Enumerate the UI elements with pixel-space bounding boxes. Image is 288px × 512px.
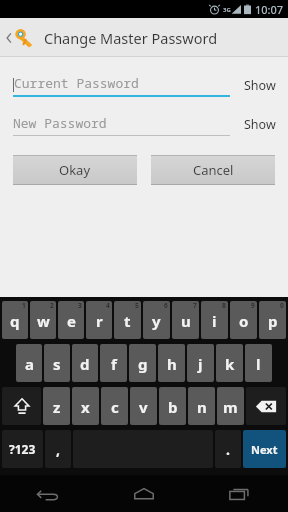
staticText: d bbox=[80, 354, 90, 374]
staticText: . bbox=[226, 440, 230, 459]
button[interactable]: 0 bbox=[259, 301, 286, 339]
staticText: v bbox=[139, 397, 148, 417]
button[interactable]: New Password bbox=[13, 114, 230, 136]
button[interactable]: f bbox=[100, 344, 127, 382]
staticText: New Password bbox=[13, 114, 107, 132]
staticText: o bbox=[239, 311, 249, 331]
button[interactable]: 5 bbox=[114, 301, 141, 339]
staticText: e bbox=[67, 311, 76, 331]
staticText: 7 bbox=[193, 301, 197, 310]
staticText: 10:07 bbox=[255, 2, 284, 17]
button[interactable]: l bbox=[245, 344, 272, 382]
staticText: w bbox=[37, 311, 50, 331]
staticText: 5 bbox=[135, 301, 139, 310]
staticText: i bbox=[212, 311, 217, 331]
button[interactable]: Recent apps bbox=[192, 475, 288, 512]
button[interactable]: . bbox=[215, 430, 241, 468]
button[interactable]: 6 bbox=[143, 301, 170, 339]
staticText: f bbox=[111, 354, 117, 374]
staticText: s bbox=[53, 354, 61, 374]
button[interactable]: ?123 bbox=[2, 430, 43, 468]
staticText: Show bbox=[244, 116, 276, 133]
button[interactable]: Show bbox=[242, 112, 278, 137]
staticText: r bbox=[96, 311, 103, 331]
button[interactable]: b bbox=[159, 387, 186, 425]
button[interactable]: Show bbox=[242, 73, 278, 98]
staticText: g bbox=[138, 354, 148, 374]
button[interactable]: Shift bbox=[2, 387, 41, 425]
staticText: j bbox=[198, 354, 203, 374]
staticText: Next bbox=[251, 442, 278, 457]
button[interactable]: 2 bbox=[30, 301, 56, 339]
staticText: 6 bbox=[164, 301, 168, 310]
button[interactable]: j bbox=[187, 344, 214, 382]
staticText: Change Master Password bbox=[44, 28, 218, 48]
button[interactable]: 3 bbox=[58, 301, 84, 339]
staticText: y bbox=[152, 311, 161, 331]
button[interactable]: 7 bbox=[172, 301, 199, 339]
button[interactable]: m bbox=[217, 387, 244, 425]
staticText: 1 bbox=[22, 301, 26, 310]
staticText: u bbox=[181, 311, 191, 331]
staticText: t bbox=[124, 311, 131, 331]
button[interactable]: d bbox=[72, 344, 98, 382]
button[interactable]: v bbox=[130, 387, 157, 425]
staticText: 3G bbox=[223, 6, 231, 14]
staticText: h bbox=[167, 354, 177, 374]
staticText: , bbox=[56, 440, 60, 459]
button[interactable]: 9 bbox=[230, 301, 257, 339]
button[interactable]: Current Password bbox=[13, 74, 230, 97]
staticText: Cancel bbox=[193, 161, 234, 179]
staticText: Current Password bbox=[14, 74, 139, 92]
button[interactable]: Home bbox=[96, 475, 192, 512]
staticText: a bbox=[25, 354, 34, 374]
staticText: k bbox=[225, 354, 235, 374]
staticText: 8 bbox=[222, 301, 226, 310]
button[interactable]: k bbox=[216, 344, 243, 382]
staticText: Show bbox=[244, 77, 276, 94]
staticText: z bbox=[53, 397, 61, 417]
staticText: 9 bbox=[251, 301, 255, 310]
staticText: n bbox=[197, 397, 207, 417]
staticText: b bbox=[168, 397, 178, 417]
staticText: 2 bbox=[50, 301, 54, 310]
button[interactable]: Okay bbox=[13, 155, 137, 185]
button[interactable]: 1 bbox=[2, 301, 28, 339]
button[interactable]: g bbox=[129, 344, 156, 382]
button[interactable]: x bbox=[72, 387, 99, 425]
staticText: m bbox=[223, 397, 238, 417]
staticText: Okay bbox=[59, 161, 91, 179]
button[interactable]: Cancel bbox=[151, 155, 275, 185]
button[interactable]: c bbox=[101, 387, 128, 425]
staticText: p bbox=[268, 311, 278, 331]
button[interactable]: Navigate up bbox=[3, 18, 36, 57]
staticText: c bbox=[111, 397, 119, 417]
staticText: 0 bbox=[280, 301, 284, 310]
button[interactable]: Next bbox=[243, 430, 286, 468]
staticText: q bbox=[10, 311, 20, 331]
button[interactable]: a bbox=[16, 344, 42, 382]
button[interactable]: , bbox=[45, 430, 71, 468]
button[interactable]: Back bbox=[0, 475, 96, 512]
button[interactable]: s bbox=[44, 344, 70, 382]
button[interactable]: n bbox=[188, 387, 215, 425]
button[interactable]: z bbox=[43, 387, 70, 425]
button[interactable]: 4 bbox=[86, 301, 112, 339]
staticText: l bbox=[256, 354, 261, 374]
staticText: x bbox=[81, 397, 90, 417]
staticText: 3 bbox=[78, 301, 82, 310]
button[interactable]: h bbox=[158, 344, 185, 382]
button[interactable]: Delete bbox=[246, 387, 286, 425]
staticText: 4 bbox=[106, 301, 110, 310]
staticText: ?123 bbox=[9, 441, 36, 457]
button[interactable]: 8 bbox=[201, 301, 228, 339]
